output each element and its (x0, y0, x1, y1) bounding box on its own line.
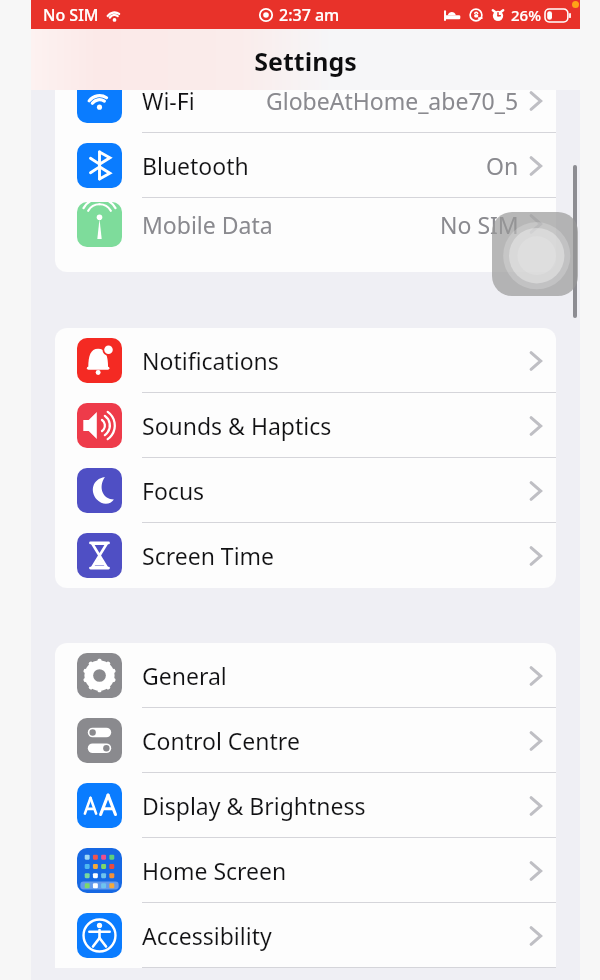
staticText: 2:37 am (279, 4, 340, 26)
staticText: Wi-Fi (142, 90, 195, 116)
staticText: 26% (511, 5, 541, 25)
button[interactable]: Control Centre (55, 708, 556, 773)
button[interactable]: General (55, 643, 556, 708)
staticText: No SIM (43, 4, 99, 26)
staticText: Sounds & Haptics (142, 410, 332, 441)
staticText: Screen Time (142, 540, 275, 571)
staticText: Control Centre (142, 725, 300, 756)
staticText: Focus (142, 475, 205, 506)
staticText: Mobile Data (142, 209, 273, 240)
staticText: GlobeAtHome_abe70_5 (266, 90, 519, 116)
button[interactable]: Wi-Fi (55, 90, 556, 133)
staticText: Settings (254, 44, 357, 78)
button[interactable]: Sounds & Haptics (55, 393, 556, 458)
staticText: General (142, 660, 227, 691)
button[interactable]: Bluetooth (55, 133, 556, 198)
button[interactable]: Accessibility (55, 903, 556, 968)
button[interactable]: Home Screen (55, 838, 556, 903)
button[interactable]: Focus (55, 458, 556, 523)
staticText: Notifications (142, 345, 279, 376)
button[interactable]: AssistiveTouch (492, 212, 578, 296)
staticText: Home Screen (142, 855, 287, 886)
button[interactable]: Mobile Data (55, 198, 556, 250)
button[interactable]: Display & Brightness (55, 773, 556, 838)
button[interactable]: Screen Time (55, 523, 556, 588)
staticText: No SIM (440, 209, 519, 240)
button[interactable]: Notifications (55, 328, 556, 393)
staticText: Bluetooth (142, 150, 249, 181)
staticText: Accessibility (142, 920, 272, 951)
staticText: Display & Brightness (142, 790, 366, 821)
staticText: On (486, 150, 519, 181)
